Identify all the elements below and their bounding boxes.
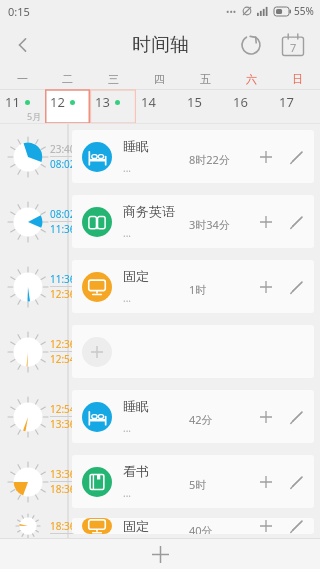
button[interactable]: Edit [281, 518, 311, 534]
staticText: 1时 [189, 282, 207, 297]
button[interactable]: Add record [82, 337, 112, 367]
button[interactable]: 13 [90, 90, 136, 123]
staticText: 40分 [189, 523, 213, 534]
staticText: ••• [226, 5, 237, 17]
staticText: 08:02 [50, 157, 76, 171]
staticText: 7 [290, 40, 297, 55]
staticText: 0:15 [8, 4, 30, 19]
button[interactable]: Add [251, 207, 281, 237]
staticText: 11:36 [50, 272, 76, 286]
button[interactable]: Add [251, 518, 281, 534]
staticText: 时间轴 [132, 33, 189, 57]
staticText: 四 [154, 72, 165, 86]
button[interactable]: Sync [230, 24, 272, 66]
button[interactable]: 14 [136, 90, 182, 123]
staticText: 55% [294, 4, 314, 18]
button[interactable]: Add [251, 142, 281, 172]
button[interactable]: Edit [281, 207, 311, 237]
staticText: 3时34分 [189, 217, 230, 232]
staticText: 8时22分 [189, 152, 230, 167]
staticText: 五 [200, 72, 211, 86]
staticText: 18:36 [50, 519, 76, 533]
button[interactable]: Add [251, 272, 281, 302]
button[interactable]: 固定 [72, 518, 314, 534]
staticText: 08:02 [50, 207, 76, 221]
button[interactable]: 固定 [72, 260, 314, 313]
staticText: 12 [50, 93, 65, 111]
staticText: 日 [292, 72, 303, 86]
button[interactable]: 看书 [72, 455, 314, 508]
staticText: 睡眠 [123, 398, 149, 414]
staticText: 13:36 [50, 417, 76, 431]
staticText: 六 [246, 72, 257, 86]
staticText: 12:54 [50, 402, 76, 416]
staticText: 一 [17, 72, 28, 86]
staticText: 17 [279, 93, 294, 111]
button[interactable]: Add [251, 402, 281, 432]
staticText: ... [123, 161, 132, 175]
button[interactable]: Add [251, 467, 281, 497]
button[interactable]: Calendar [272, 24, 314, 66]
staticText: 23:40 [50, 142, 76, 156]
staticText: 看书 [123, 463, 149, 479]
button[interactable]: 15 [182, 90, 228, 123]
staticText: 11:36 [50, 222, 76, 236]
button[interactable]: 11 [0, 90, 45, 123]
staticText: 16 [233, 93, 248, 111]
button[interactable]: 商务英语 [72, 195, 314, 248]
staticText: 二 [62, 72, 73, 86]
staticText: 12:36 [50, 337, 76, 351]
staticText: 5时 [189, 477, 207, 492]
staticText: 12:36 [50, 287, 76, 301]
button[interactable]: 16 [228, 90, 274, 123]
staticText: ... [123, 291, 132, 305]
staticText: 睡眠 [123, 138, 149, 154]
button[interactable]: 17 [274, 90, 320, 123]
staticText: 14 [141, 93, 156, 111]
button[interactable]: Back [0, 22, 46, 68]
staticText: 12:54 [50, 352, 76, 366]
staticText: 5月 [27, 110, 42, 122]
staticText: 固定 [123, 518, 149, 534]
staticText: 42分 [189, 412, 213, 427]
staticText: 三 [108, 72, 119, 86]
button[interactable]: 睡眠 [72, 130, 314, 183]
button[interactable]: 睡眠 [72, 390, 314, 443]
staticText: ... [123, 226, 132, 240]
button[interactable]: Edit [281, 142, 311, 172]
button[interactable]: Edit [281, 467, 311, 497]
button[interactable]: Edit [281, 402, 311, 432]
staticText: 13 [95, 93, 110, 111]
staticText: 11 [5, 93, 20, 111]
staticText: 固定 [123, 268, 149, 284]
staticText: 18:36 [50, 482, 76, 496]
staticText: 13:36 [50, 467, 76, 481]
staticText: 商务英语 [123, 203, 175, 219]
button[interactable]: 12 [45, 90, 90, 123]
staticText: ... [123, 486, 132, 500]
button[interactable]: Add record [72, 325, 314, 378]
button[interactable]: Edit [281, 272, 311, 302]
button[interactable]: Add entry [137, 539, 183, 569]
staticText: ... [123, 421, 132, 435]
staticText: 15 [187, 93, 202, 111]
